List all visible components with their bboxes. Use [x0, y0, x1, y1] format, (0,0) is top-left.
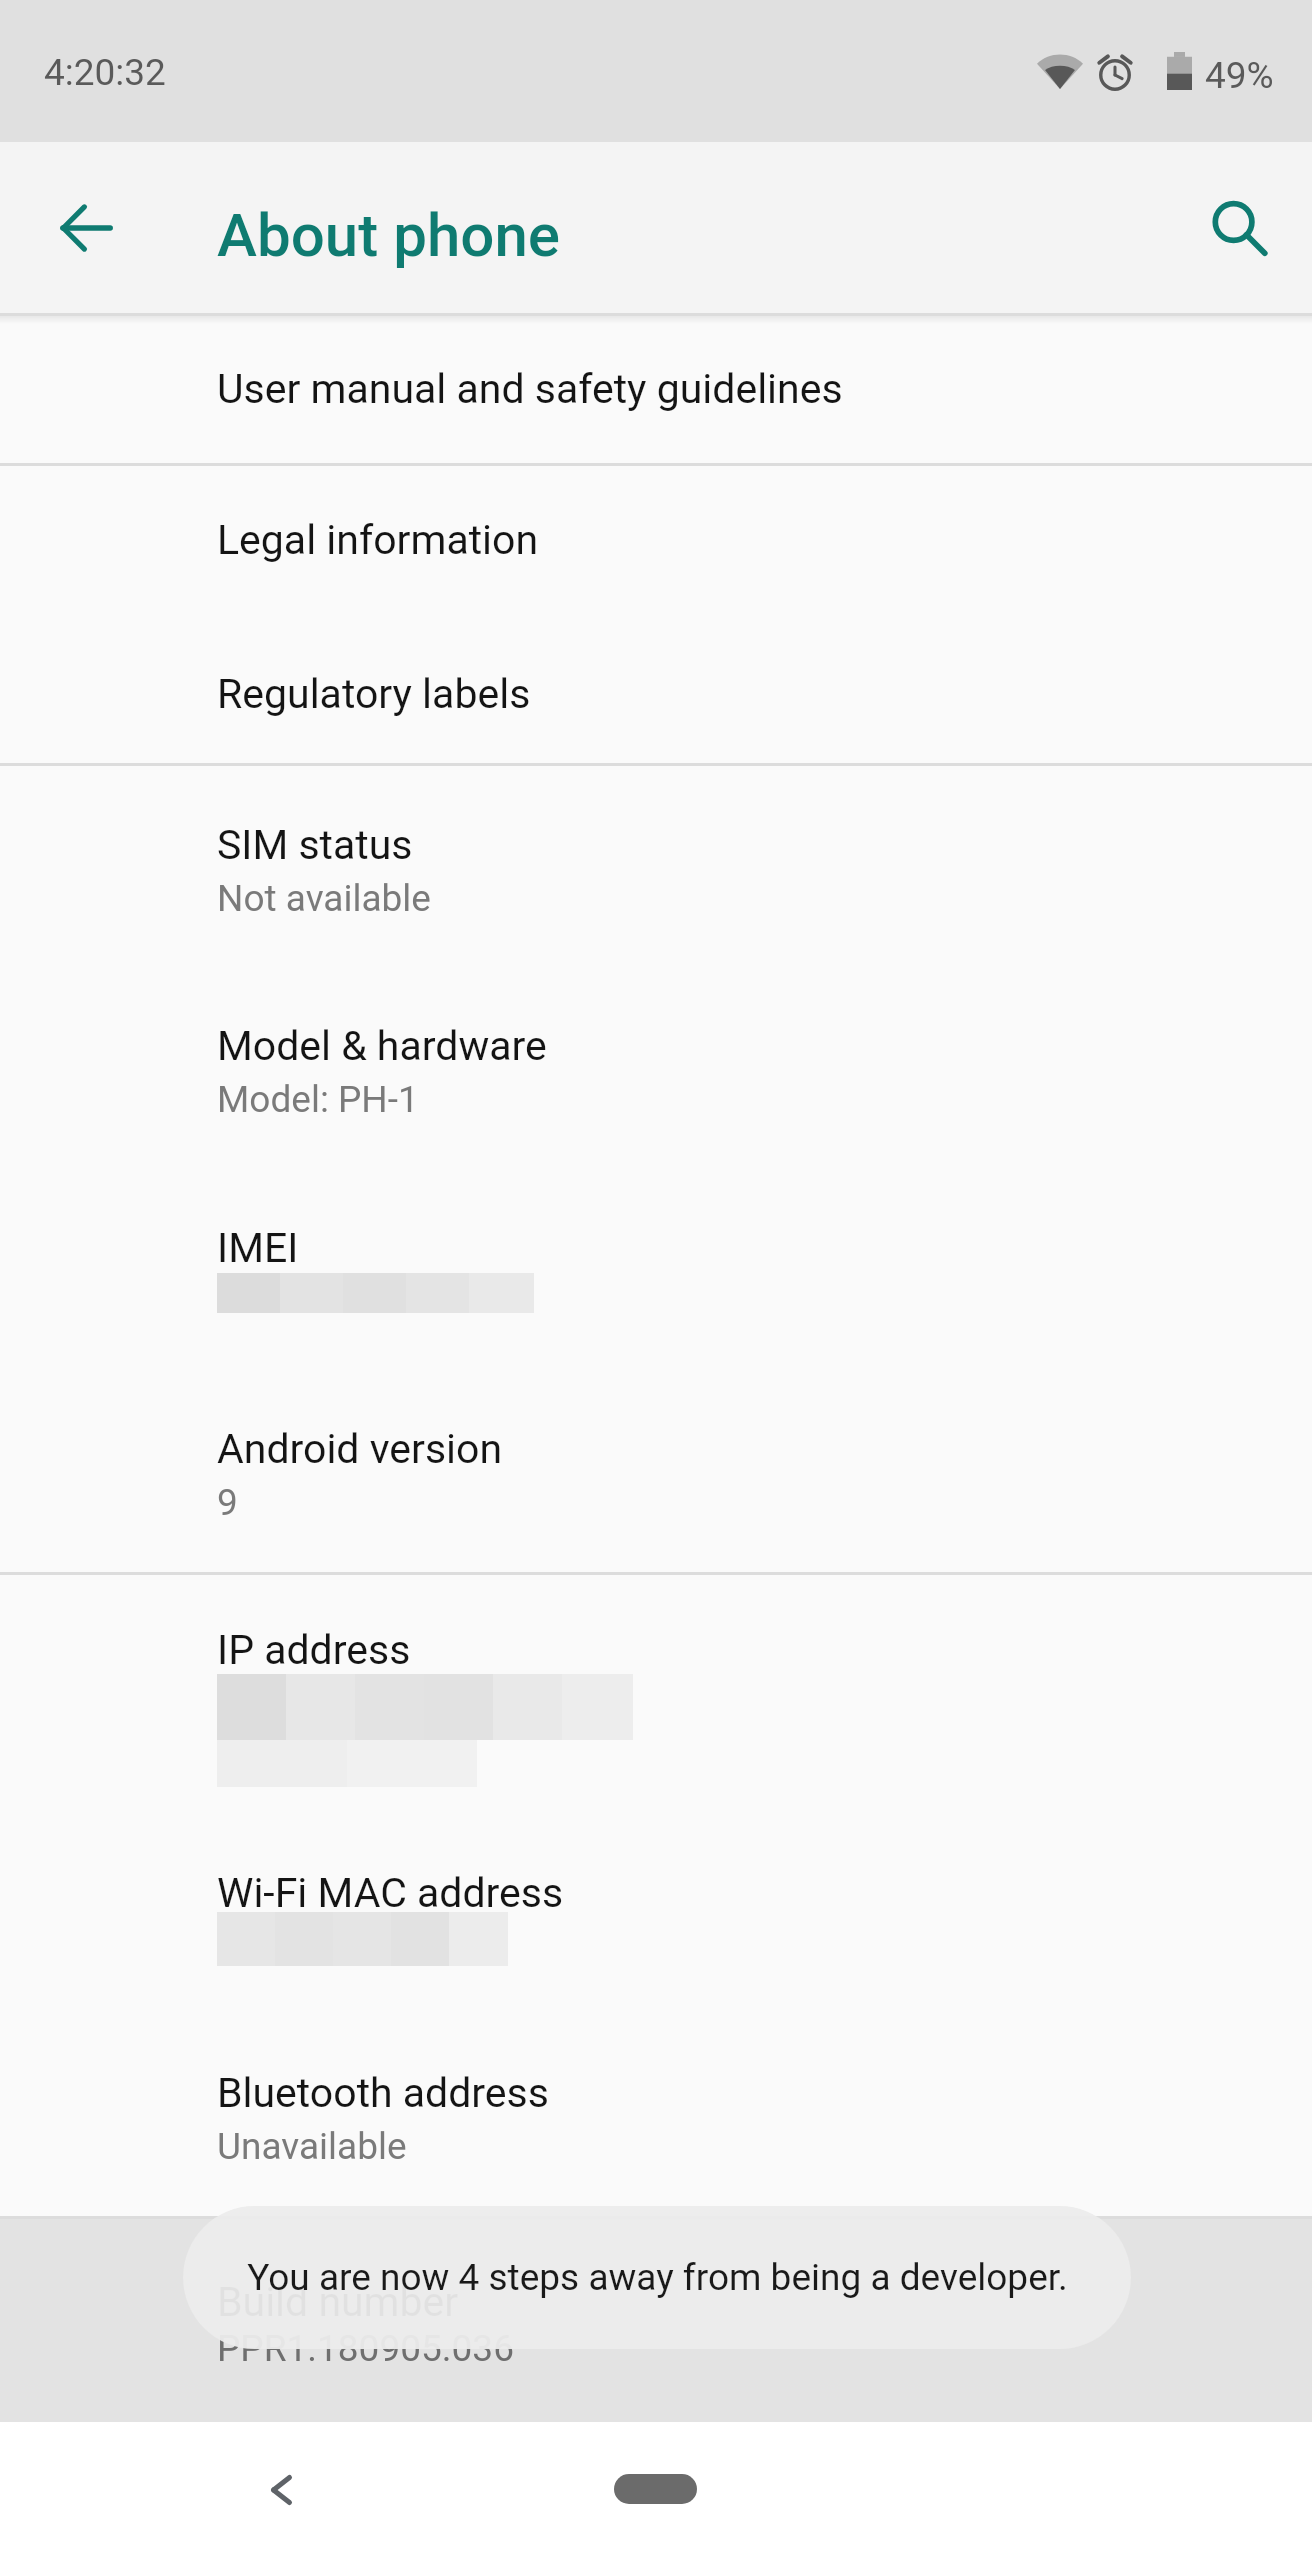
staticText: 49%	[1205, 54, 1274, 97]
staticText: 9	[217, 1481, 238, 1524]
staticText: You are now 4 steps away from being a de…	[247, 2256, 1068, 2299]
button[interactable]: Regulatory labels	[0, 620, 1312, 763]
staticText: Unavailable	[217, 2125, 407, 2168]
button[interactable]: Home	[614, 2474, 697, 2504]
staticText: Not available	[217, 877, 431, 920]
button[interactable]: Wi-Fi MAC address	[0, 1818, 1312, 2018]
button[interactable]: SIM status	[0, 766, 1312, 967]
staticText: Regulatory labels	[217, 670, 531, 718]
button[interactable]: Bluetooth address	[0, 2018, 1312, 2216]
button[interactable]: Model & hardware	[0, 967, 1312, 1169]
button[interactable]: IMEI	[0, 1169, 1312, 1370]
staticText: SIM status	[217, 821, 413, 869]
button[interactable]: User manual and safety guidelines	[0, 316, 1312, 463]
button[interactable]: Back	[26, 168, 146, 288]
staticText: Legal information	[217, 516, 539, 564]
button[interactable]: Back	[219, 2428, 343, 2552]
staticText: Model & hardware	[217, 1022, 547, 1070]
staticText: Wi-Fi MAC address	[217, 1869, 564, 1917]
staticText: Model: PH-1	[217, 1078, 419, 1121]
button[interactable]: IP address	[0, 1575, 1312, 1818]
button[interactable]: Legal information	[0, 466, 1312, 620]
staticText: User manual and safety guidelines	[217, 365, 843, 413]
staticText: Bluetooth address	[217, 2069, 549, 2117]
staticText: IP address	[217, 1626, 411, 1674]
staticText: Android version	[217, 1425, 503, 1473]
button[interactable]: Search	[1179, 168, 1299, 288]
staticText: About phone	[217, 200, 560, 270]
button[interactable]: Android version	[0, 1370, 1312, 1572]
staticText: PPR1.180905.036	[217, 2327, 514, 2370]
staticText: IMEI	[217, 1224, 299, 1272]
staticText: 4:20:32	[44, 51, 166, 94]
button[interactable]: Build number	[0, 2219, 1312, 2419]
staticText: Build number	[217, 2278, 459, 2326]
